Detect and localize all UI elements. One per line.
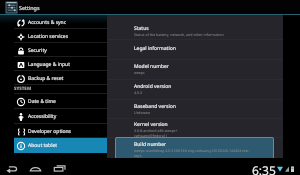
- staticText: Developer options: [28, 128, 72, 135]
- staticText: Legal information: [134, 45, 176, 52]
- staticText: weepc-userdebug 4.0.3 IML74K eng.cwhuang…: [134, 148, 250, 158]
- staticText: Security: [28, 47, 47, 54]
- button[interactable]: Back: [5, 162, 18, 175]
- button[interactable]: Kernel version: [107, 119, 283, 138]
- button[interactable]: Accessibility: [14, 109, 107, 124]
- staticText: Date & time: [28, 98, 56, 105]
- button[interactable]: Home: [29, 162, 42, 175]
- button[interactable]: Date & time: [14, 94, 107, 109]
- staticText: About tablet: [28, 142, 58, 149]
- staticText: 4.0.3: [134, 90, 143, 95]
- button[interactable]: Backup & reset: [14, 71, 107, 85]
- staticText: Model number: [134, 63, 169, 70]
- staticText: Accounts & sync: [28, 19, 67, 26]
- button[interactable]: Baseband version: [107, 100, 283, 119]
- button[interactable]: Location services: [14, 29, 107, 43]
- button[interactable]: Developer options: [14, 124, 107, 138]
- staticText: Backup & reset: [28, 75, 64, 82]
- staticText: weepc: [134, 70, 145, 75]
- button[interactable]: Android version: [107, 80, 283, 100]
- staticText: 6:35: [252, 162, 276, 175]
- button[interactable]: Security: [14, 43, 107, 57]
- staticText: Accessibility: [28, 113, 57, 120]
- button[interactable]: Language & input: [14, 57, 107, 71]
- button[interactable]: Legal information: [107, 40, 283, 60]
- staticText: Location services: [28, 33, 69, 40]
- staticText: 3.0.8-android-x86-weepc+ cwhuang@fedora1…: [134, 128, 178, 138]
- staticText: Language & input: [28, 61, 70, 68]
- button[interactable]: Recents: [53, 162, 66, 175]
- staticText: Android version: [134, 83, 172, 90]
- staticText: Build number: [134, 141, 167, 148]
- staticText: Kernel version: [134, 121, 168, 128]
- staticText: Status: [134, 25, 149, 32]
- staticText: Baseband version: [134, 103, 176, 110]
- staticText: Status of the battery, network, and othe…: [134, 32, 224, 37]
- staticText: Settings: [19, 4, 40, 11]
- staticText: SYSTEM: [14, 85, 32, 91]
- button[interactable]: Accounts & sync: [14, 15, 107, 29]
- staticText: Unknown: [134, 110, 151, 115]
- button[interactable]: Status: [107, 15, 283, 40]
- button[interactable]: About tablet: [14, 138, 107, 153]
- button[interactable]: Build number: [107, 137, 283, 160]
- button[interactable]: Model number: [107, 60, 283, 80]
